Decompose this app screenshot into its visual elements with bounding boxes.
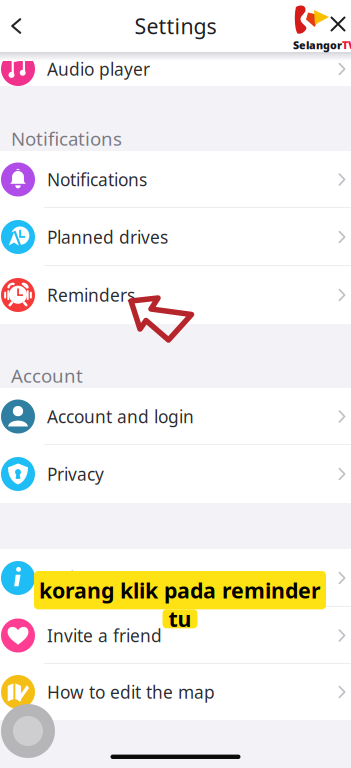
staticText: Invite a friend — [47, 624, 162, 647]
staticText: Reminders — [47, 283, 135, 306]
staticText: Notifications — [11, 126, 122, 151]
staticText: Planned drives — [47, 225, 168, 248]
button[interactable]: Help — [0, 549, 351, 607]
staticText: Account and login — [47, 405, 194, 428]
button[interactable]: Account and login — [0, 388, 351, 445]
button[interactable]: Privacy — [0, 445, 351, 503]
button[interactable]: Audio player — [0, 40, 351, 98]
staticText: How to edit the map — [47, 680, 215, 703]
staticText: Account — [11, 363, 83, 388]
button[interactable]: Back — [0, 6, 34, 46]
staticText: tu — [168, 605, 191, 633]
button[interactable]: Reminders — [0, 266, 351, 324]
staticText: Notifications — [47, 168, 147, 191]
staticText: TV — [342, 38, 351, 52]
button[interactable]: Planned drives — [0, 208, 351, 266]
staticText: korang klik pada reminder — [39, 576, 321, 604]
staticText: Selangor — [293, 38, 342, 52]
staticText: Settings — [134, 12, 216, 40]
staticText: Help — [47, 566, 85, 589]
button[interactable]: Notifications — [0, 151, 351, 208]
staticText: Audio player — [47, 57, 150, 80]
button[interactable]: How to edit the map — [0, 664, 351, 720]
button[interactable]: Invite a friend — [0, 607, 351, 664]
staticText: Privacy — [47, 462, 104, 485]
